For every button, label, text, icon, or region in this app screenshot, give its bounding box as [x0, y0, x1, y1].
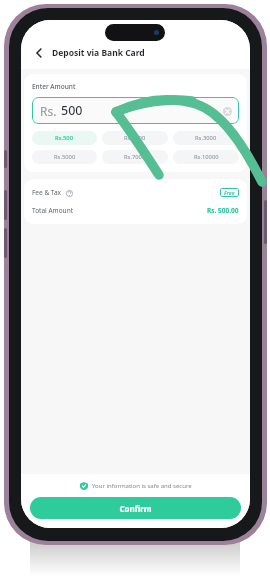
- button[interactable]: Confirm: [30, 497, 241, 519]
- button[interactable]: Fee and tax info: [65, 189, 73, 197]
- staticText: Total Amount: [32, 206, 73, 215]
- staticText: 500: [61, 102, 83, 119]
- button[interactable]: Rs.7000: [102, 150, 168, 164]
- button[interactable]: Rs.1500: [102, 131, 168, 145]
- button[interactable]: Rs.10000: [173, 150, 239, 164]
- staticText: Free: [224, 189, 235, 196]
- staticText: Rs.1500: [124, 134, 146, 142]
- staticText: Rs.: [40, 103, 57, 119]
- staticText: Confirm: [119, 503, 152, 514]
- staticText: Your information is safe and secure: [92, 482, 192, 490]
- staticText: Rs.3000: [195, 134, 217, 142]
- button[interactable]: Rs.5000: [32, 150, 97, 164]
- button[interactable]: Clear amount: [221, 105, 233, 117]
- staticText: Rs.500: [55, 134, 74, 142]
- staticText: Deposit via Bank Card: [52, 47, 145, 59]
- staticText: Rs. 500.00: [207, 206, 239, 215]
- staticText: Enter Amount: [32, 82, 76, 91]
- staticText: Rs.10000: [194, 153, 219, 161]
- staticText: Rs.7000: [124, 153, 146, 161]
- button[interactable]: Back: [30, 44, 48, 62]
- staticText: Fee & Tax: [32, 188, 62, 197]
- staticText: Rs.5000: [54, 153, 76, 161]
- button[interactable]: Rs.500: [32, 131, 97, 145]
- button[interactable]: Rs.3000: [173, 131, 239, 145]
- button[interactable]: Rs.: [32, 97, 239, 124]
